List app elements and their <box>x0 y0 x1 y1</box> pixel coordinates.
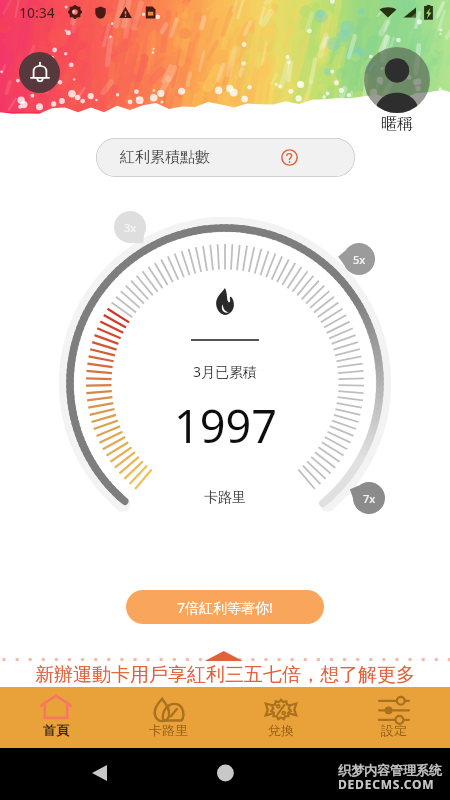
staticText: 暱稱 <box>381 114 413 134</box>
staticText: 紅利累積點數 <box>120 148 210 167</box>
button[interactable]: 新辦運動卡用戶享紅利三五七倍，想了解更多 <box>0 650 450 687</box>
button[interactable]: 兌換 <box>224 687 337 748</box>
staticText: 新辦運動卡用戶享紅利三五七倍，想了解更多 <box>35 663 415 687</box>
staticText: 3月已累積 <box>193 362 258 381</box>
staticText: 3x <box>124 220 137 235</box>
button[interactable]: 3x <box>113 210 147 244</box>
button[interactable]: 設定 <box>337 687 450 748</box>
button[interactable]: 7倍紅利等著你! <box>126 590 324 624</box>
button[interactable]: 卡路里 <box>112 687 224 748</box>
staticText: 卡路里 <box>149 722 188 738</box>
button[interactable]: 首頁 <box>0 687 112 748</box>
button[interactable]: 7x <box>352 481 386 515</box>
button[interactable]: 紅利累積點數 <box>96 138 355 177</box>
staticText: 7x <box>363 491 376 506</box>
button[interactable]: 5x <box>342 242 376 276</box>
staticText: 7倍紅利等著你! <box>177 598 273 617</box>
staticText: 5x <box>353 252 366 267</box>
staticText: DEDECMS.COM <box>338 776 435 792</box>
staticText: 設定 <box>381 722 407 738</box>
staticText: 首頁 <box>43 722 69 738</box>
staticText: 卡路里 <box>204 489 246 507</box>
button[interactable]: Notifications <box>19 52 60 93</box>
staticText: 织梦内容管理系统 <box>338 762 442 778</box>
staticText: 10:34 <box>19 3 55 22</box>
staticText: 兌換 <box>268 722 294 738</box>
button[interactable]: Profile <box>364 47 430 113</box>
staticText: 1997 <box>174 395 277 456</box>
